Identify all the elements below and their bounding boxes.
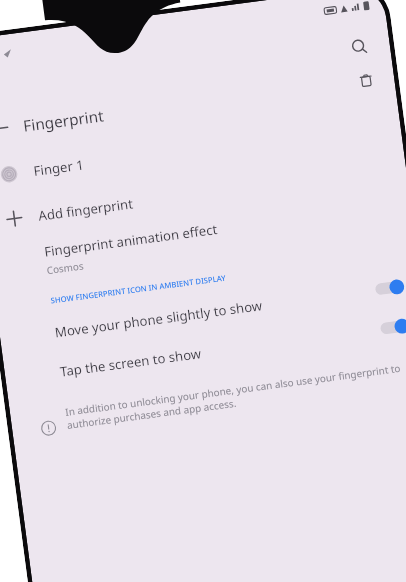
button[interactable]: Finger 1 bbox=[0, 103, 403, 197]
button[interactable]: Fingerprint animation effect bbox=[0, 192, 406, 288]
staticText: Tap the screen to show bbox=[59, 344, 203, 380]
staticText: Fingerprint animation effect bbox=[43, 220, 219, 260]
staticText: Finger 1 bbox=[32, 155, 85, 179]
staticText: Fingerprint bbox=[22, 105, 105, 136]
button[interactable]: Delete bbox=[351, 65, 380, 95]
button[interactable]: Move your phone slightly to show bbox=[0, 265, 406, 358]
button[interactable]: Back bbox=[0, 112, 16, 144]
staticText: SHOW FINGERPRINT ICON IN AMBIENT DISPLAY bbox=[50, 273, 227, 307]
button[interactable]: Add fingerprint bbox=[0, 148, 406, 241]
staticText: In addition to unlocking your phone, you… bbox=[64, 360, 406, 432]
staticText: Move your phone slightly to show bbox=[54, 296, 263, 341]
staticText: Add fingerprint bbox=[37, 194, 134, 224]
button[interactable]: Search bbox=[344, 32, 374, 61]
button[interactable]: Tap the screen to show bbox=[3, 304, 406, 397]
staticText: Cosmos bbox=[46, 258, 85, 276]
